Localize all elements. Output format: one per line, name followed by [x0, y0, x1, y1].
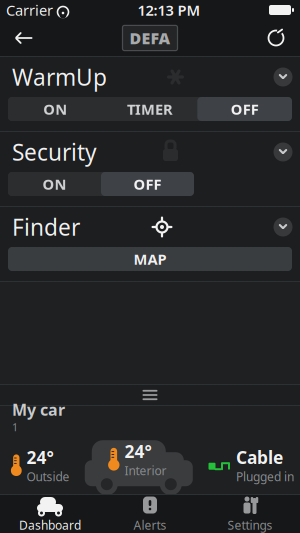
staticText: 24° — [124, 440, 151, 463]
button[interactable]: Expand section — [266, 135, 300, 169]
staticText: 12:13 PM — [137, 0, 200, 20]
button[interactable]: Back — [2, 21, 46, 55]
button[interactable]: Refresh — [254, 21, 298, 55]
button[interactable]: Expand section — [266, 60, 300, 94]
staticText: Finder — [12, 212, 80, 242]
button[interactable]: TIMER — [103, 97, 197, 121]
button[interactable]: OFF — [197, 97, 292, 121]
staticText: 24° — [27, 446, 54, 469]
staticText: Alerts — [133, 517, 166, 533]
button[interactable]: OFF — [101, 172, 194, 196]
staticText: Settings — [227, 517, 272, 533]
button[interactable]: ON — [8, 97, 103, 121]
staticText: Carrier — [6, 0, 53, 20]
button[interactable]: Settings — [200, 495, 300, 533]
button[interactable]: Expand section — [266, 210, 300, 244]
staticText: Dashboard — [19, 517, 81, 533]
staticText: MAP — [133, 249, 166, 269]
staticText: WarmUp — [12, 62, 107, 92]
button[interactable]: Drag handle — [0, 385, 300, 405]
staticText: TIMER — [127, 99, 173, 119]
staticText: OFF — [231, 99, 259, 119]
button[interactable]: Dashboard — [0, 495, 100, 533]
staticText: Interior — [124, 463, 166, 479]
staticText: DEFA — [129, 27, 170, 49]
button[interactable]: Alerts — [100, 495, 200, 533]
staticText: My car — [12, 399, 65, 420]
staticText: Cable — [236, 446, 283, 469]
staticText: Security — [12, 137, 97, 167]
button[interactable]: MAP — [8, 247, 292, 271]
staticText: OFF — [133, 174, 161, 194]
staticText: Outside — [27, 469, 70, 485]
staticText: ON — [42, 174, 66, 194]
staticText: Plugged in — [236, 469, 294, 485]
button[interactable]: ON — [8, 172, 101, 196]
staticText: 1 — [12, 420, 18, 434]
staticText: ON — [43, 99, 67, 119]
